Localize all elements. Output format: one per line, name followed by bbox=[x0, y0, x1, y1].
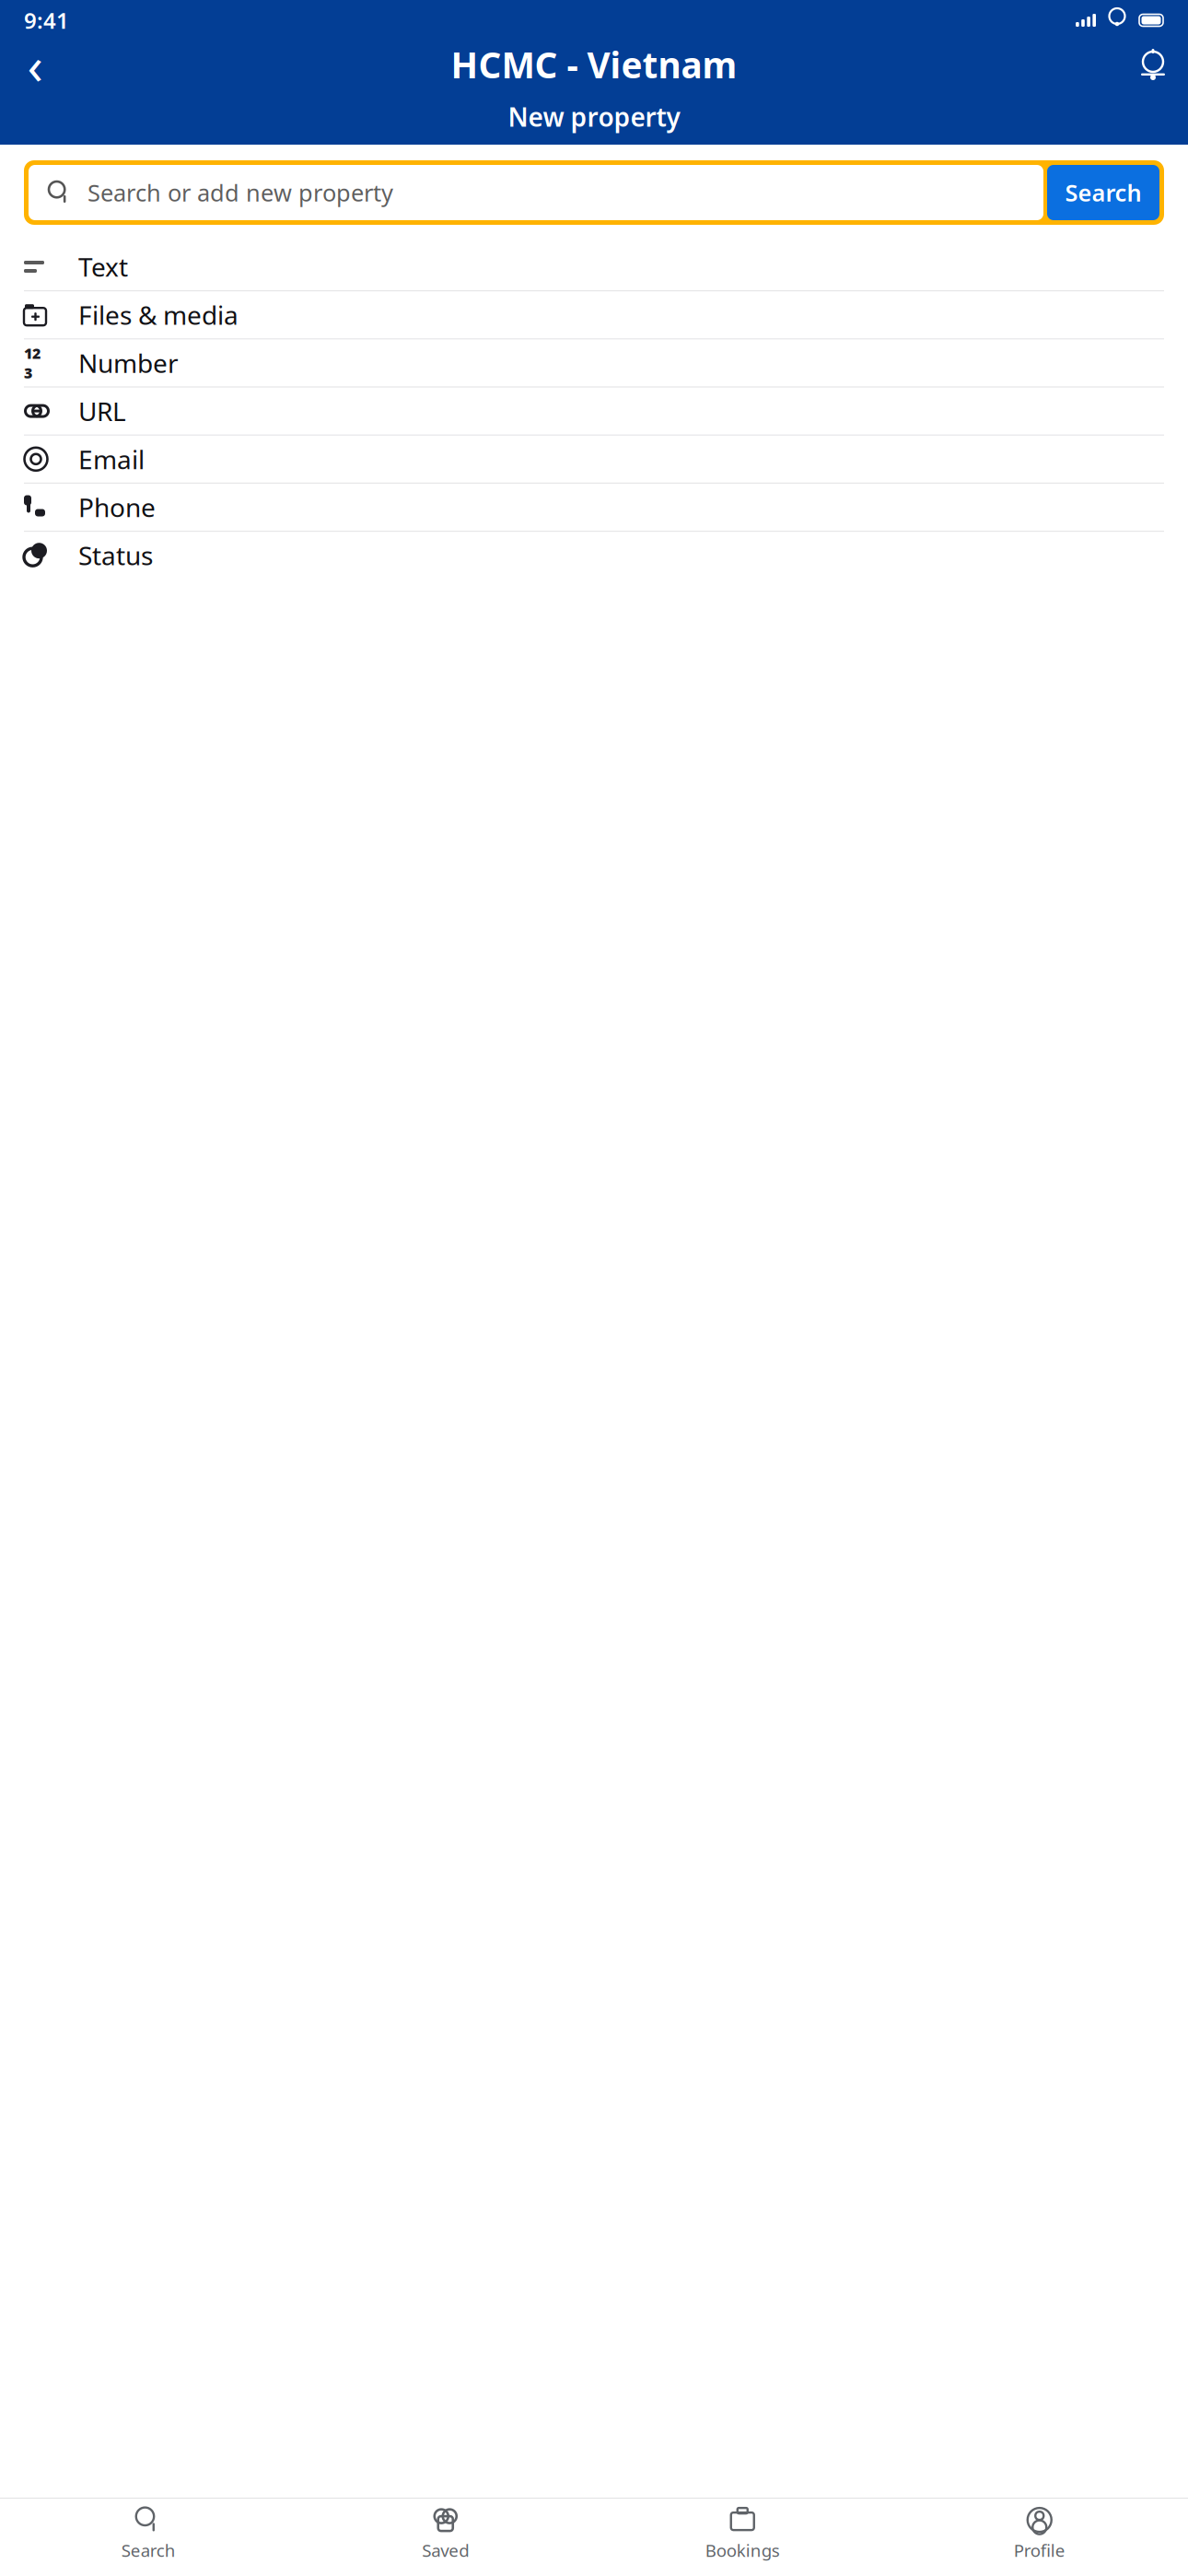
button[interactable]: Saved bbox=[297, 2508, 594, 2561]
staticText: Search bbox=[121, 2539, 176, 2562]
button[interactable]: Profile bbox=[891, 2508, 1188, 2561]
button[interactable]: URL bbox=[0, 388, 1188, 434]
staticText: Files & media bbox=[78, 298, 239, 332]
button[interactable]: Bookings bbox=[594, 2508, 891, 2561]
staticText: Text bbox=[78, 250, 128, 284]
button[interactable]: 123 bbox=[0, 339, 1188, 386]
staticText: URL bbox=[78, 394, 126, 428]
staticText: Phone bbox=[78, 490, 156, 524]
button[interactable]: Phone bbox=[0, 484, 1188, 531]
staticText: ‹ bbox=[27, 30, 43, 99]
staticText: HCMC - Vietnam bbox=[451, 41, 737, 88]
staticText: Number bbox=[78, 346, 179, 380]
staticText: Email bbox=[78, 442, 145, 476]
button[interactable]: Files & media bbox=[0, 291, 1188, 338]
button[interactable]: Notifications bbox=[1127, 41, 1179, 88]
staticText: Profile bbox=[1014, 2539, 1065, 2562]
staticText: Search bbox=[1065, 177, 1141, 208]
button[interactable]: Search bbox=[1047, 165, 1159, 220]
button[interactable]: Search or add new property bbox=[29, 165, 1043, 220]
button[interactable]: Back bbox=[9, 41, 61, 88]
staticText: Saved bbox=[422, 2539, 469, 2562]
button[interactable]: Search bbox=[0, 2508, 297, 2561]
staticText: Status bbox=[78, 538, 153, 572]
button[interactable]: Email bbox=[0, 436, 1188, 483]
button[interactable]: Status bbox=[0, 532, 1188, 579]
staticText: Search or add new property bbox=[87, 177, 393, 208]
staticText: 9:41 bbox=[24, 6, 69, 35]
staticText: New property bbox=[508, 100, 680, 134]
staticText: 123 bbox=[24, 343, 41, 383]
staticText: Bookings bbox=[705, 2539, 780, 2562]
button[interactable]: Text bbox=[0, 243, 1188, 290]
